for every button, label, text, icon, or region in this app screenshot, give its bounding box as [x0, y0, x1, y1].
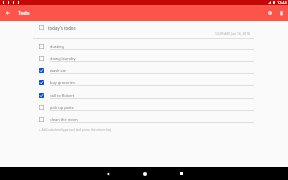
staticText: clean the room [50, 117, 78, 122]
button[interactable]: Home [138, 167, 151, 180]
staticText: 12:09 AM Jun 16, 2018 [215, 31, 250, 35]
button[interactable]: clean the room [0, 114, 288, 125]
button[interactable]: Restore [264, 5, 275, 21]
staticText: wash car [50, 68, 67, 73]
button[interactable]: wash car [0, 65, 288, 76]
button[interactable]: Back [0, 5, 16, 21]
staticText: buy groceries [50, 80, 75, 85]
staticText: today's todos [48, 25, 76, 31]
staticText: Todo [18, 10, 30, 17]
staticText: call to Robert [50, 93, 75, 98]
button[interactable]: buy groceries [0, 77, 288, 88]
button[interactable]: dusting [0, 41, 288, 52]
button[interactable]: call to Robert [0, 90, 288, 101]
button[interactable]: Back [101, 167, 114, 180]
staticText: pick up parts [50, 105, 74, 110]
button[interactable]: Recents [175, 167, 188, 180]
staticText: doing laundry [50, 56, 76, 61]
button[interactable]: today's todos [0, 22, 288, 33]
button[interactable]: pick up parts [0, 102, 288, 113]
button[interactable]: Delete [276, 5, 287, 21]
button[interactable]: doing laundry [0, 53, 288, 64]
staticText: 12:44 [277, 0, 287, 5]
staticText: + Add sub-item/type text and press the r… [39, 128, 112, 132]
staticText: dusting [50, 44, 64, 49]
